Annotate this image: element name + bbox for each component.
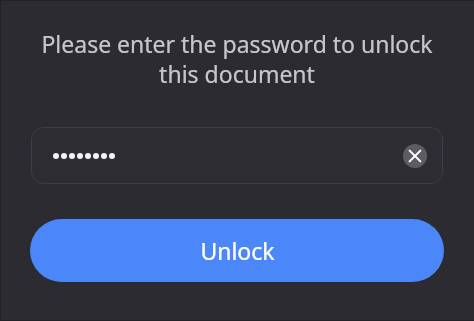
staticText: Unlock [200, 235, 275, 266]
staticText: Please enter the password to unlock this… [38, 28, 436, 89]
button[interactable]: Clear password [31, 127, 443, 184]
button[interactable]: Unlock [30, 219, 444, 282]
button[interactable]: Clear password [403, 144, 427, 168]
